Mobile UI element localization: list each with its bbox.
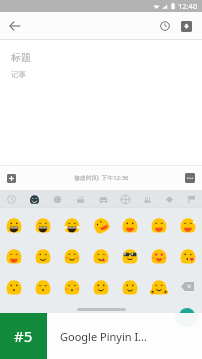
button[interactable]: Emoji [28, 240, 57, 271]
button[interactable]: Voice input [179, 308, 195, 324]
button[interactable]: Emoji [115, 209, 144, 240]
button[interactable]: Reminder [155, 16, 175, 36]
button[interactable]: Emoji [57, 271, 86, 302]
button[interactable]: Backspace [173, 271, 202, 302]
button[interactable]: Back [4, 15, 26, 37]
staticText: #5 [14, 326, 33, 346]
button[interactable]: Emoji [115, 271, 144, 302]
button[interactable]: Emoji [173, 240, 202, 271]
button[interactable]: Emoji [0, 209, 28, 240]
button[interactable]: Emoji [28, 271, 57, 302]
button[interactable]: More options [183, 171, 197, 185]
button[interactable]: Emoji [144, 240, 173, 271]
button[interactable]: Emoji [57, 209, 86, 240]
button[interactable]: Emoji [115, 240, 144, 271]
button[interactable]: Emoji [57, 240, 86, 271]
button[interactable]: Emoji [86, 271, 115, 302]
staticText: 12:40 [178, 1, 198, 11]
button[interactable]: Emoji [0, 240, 28, 271]
button[interactable]: Objects [136, 190, 158, 208]
staticText: 标题 [11, 51, 31, 64]
staticText: 修改时间: 下午12:36 [74, 174, 129, 182]
staticText: Google Pinyin I... [60, 329, 147, 344]
button[interactable]: Add attachment [4, 171, 18, 185]
button[interactable]: Food [69, 190, 92, 208]
staticText: 记事 [11, 70, 26, 79]
button[interactable]: Emoji [86, 209, 115, 240]
button[interactable]: Smileys [23, 190, 46, 208]
button[interactable]: Emoji [86, 240, 115, 271]
button[interactable]: Emoji [173, 209, 202, 240]
button[interactable]: Symbols [158, 190, 180, 208]
button[interactable]: Recent [0, 190, 23, 208]
button[interactable]: Resize keyboard [77, 308, 126, 311]
button[interactable]: Emoji [144, 271, 173, 302]
button[interactable]: Emoji [28, 209, 57, 240]
button[interactable]: Nature [46, 190, 69, 208]
button[interactable]: Activity [114, 190, 136, 208]
button[interactable]: Archive [176, 16, 196, 36]
button[interactable]: Flags [180, 190, 202, 208]
button[interactable]: #5 [0, 313, 47, 359]
button[interactable]: Travel [92, 190, 114, 208]
button[interactable]: Emoji [0, 271, 28, 302]
button[interactable]: Emoji [144, 209, 173, 240]
